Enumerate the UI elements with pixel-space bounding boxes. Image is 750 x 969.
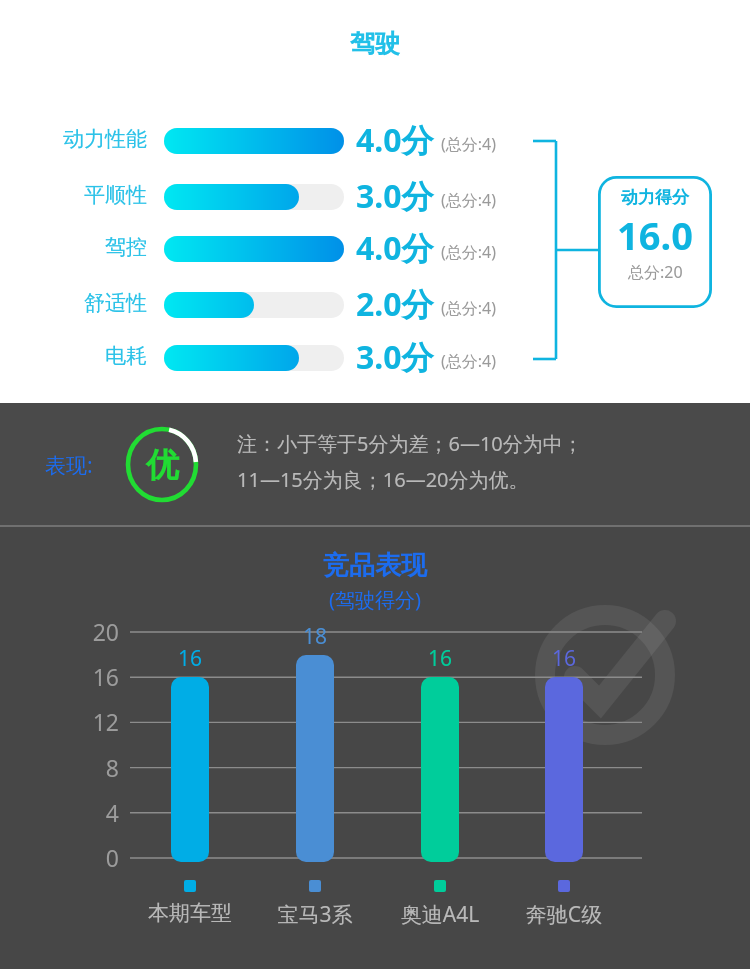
staticText: 动力性能 (0, 126, 147, 152)
staticText: (总分:4) (441, 350, 497, 372)
button[interactable]: 奥迪A4L (378, 900, 502, 929)
button[interactable] (296, 655, 334, 862)
staticText: (总分:4) (441, 189, 497, 211)
staticText: 注：小于等于5分为差；6—10分为中； (237, 430, 583, 457)
staticText: 竞品表现 (0, 549, 750, 582)
staticText: 动力得分 (621, 187, 689, 208)
staticText: (总分:4) (441, 297, 497, 319)
button[interactable] (421, 677, 459, 862)
staticText: 3.0分 (356, 335, 434, 379)
button[interactable] (171, 677, 209, 862)
staticText: 驾控 (0, 234, 147, 260)
staticText: 本期车型 (128, 900, 252, 926)
button[interactable]: 奔驰C级 (502, 900, 626, 929)
staticText: 4.0分 (356, 118, 434, 162)
button[interactable]: 动力性能 (0, 126, 147, 152)
staticText: 奥迪A4L (378, 900, 502, 929)
button[interactable]: 舒适性 (0, 290, 147, 316)
staticText: 16 (160, 644, 220, 673)
staticText: 0 (73, 842, 119, 873)
staticText: 电耗 (0, 343, 147, 369)
staticText: (总分:4) (441, 133, 497, 155)
staticText: 奔驰C级 (502, 900, 626, 929)
staticText: 2.0分 (356, 282, 434, 326)
staticText: 8 (73, 752, 119, 783)
staticText: 宝马3系 (253, 900, 377, 929)
button[interactable]: 电耗 (0, 343, 147, 369)
staticText: 20 (73, 616, 119, 647)
staticText: 优 (146, 444, 179, 486)
button[interactable]: 平顺性 (0, 182, 147, 208)
button[interactable] (545, 677, 583, 862)
staticText: 驾驶 (0, 28, 750, 59)
staticText: 12 (73, 706, 119, 737)
staticText: 16 (410, 644, 470, 673)
staticText: (驾驶得分) (0, 586, 750, 613)
button[interactable]: 驾控 (0, 234, 147, 260)
button[interactable]: 本期车型 (128, 900, 252, 926)
staticText: 4.0分 (356, 226, 434, 270)
staticText: 平顺性 (0, 182, 147, 208)
staticText: 4 (73, 797, 119, 828)
button[interactable]: 动力得分 (598, 176, 712, 308)
staticText: 11—15分为良；16—20分为优。 (237, 466, 529, 493)
staticText: (总分:4) (441, 241, 497, 263)
staticText: 16 (534, 644, 594, 673)
staticText: 18 (285, 622, 345, 651)
button[interactable]: 宝马3系 (253, 900, 377, 929)
staticText: 3.0分 (356, 174, 434, 218)
staticText: 舒适性 (0, 290, 147, 316)
staticText: 16 (73, 661, 119, 692)
staticText: 总分:20 (628, 261, 683, 283)
staticText: 表现: (45, 451, 93, 480)
staticText: 16.0 (617, 209, 693, 261)
